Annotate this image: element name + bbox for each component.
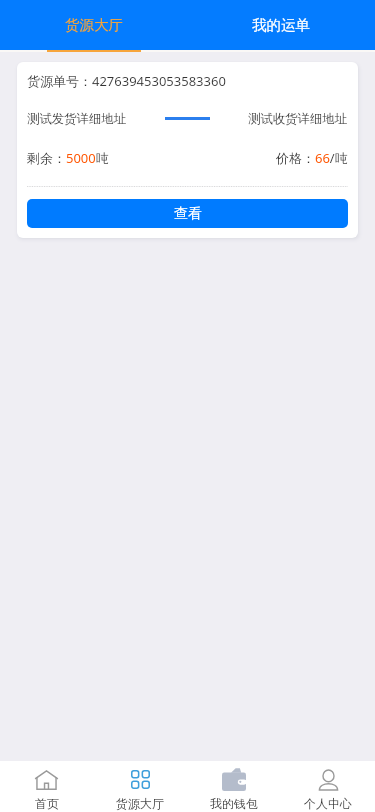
- staticText: 个人中心: [304, 796, 352, 811]
- staticText: 价格：66/吨: [276, 149, 348, 167]
- button[interactable]: 货源大厅: [0, 0, 187, 50]
- button[interactable]: 查看: [27, 199, 348, 228]
- staticText: 我的运单: [252, 16, 310, 34]
- staticText: 测试发货详细地址: [27, 111, 127, 127]
- button[interactable]: Home: [0, 761, 93, 812]
- staticText: 货源单号：427639453053583360: [27, 72, 226, 90]
- staticText: 货源大厅: [116, 796, 164, 811]
- staticText: 我的钱包: [210, 796, 258, 811]
- button[interactable]: 我的运单: [187, 0, 375, 50]
- button[interactable]: 货源单号：427639453053583360: [17, 62, 358, 238]
- button[interactable]: Wallet: [187, 761, 281, 812]
- staticText: 查看: [174, 205, 202, 223]
- staticText: 货源大厅: [65, 16, 123, 34]
- staticText: 剩余：5000吨: [27, 149, 109, 167]
- button[interactable]: Cargo Hall: [93, 761, 187, 812]
- staticText: 测试收货详细地址: [248, 111, 348, 127]
- staticText: 首页: [35, 796, 59, 811]
- button[interactable]: Profile: [281, 761, 375, 812]
